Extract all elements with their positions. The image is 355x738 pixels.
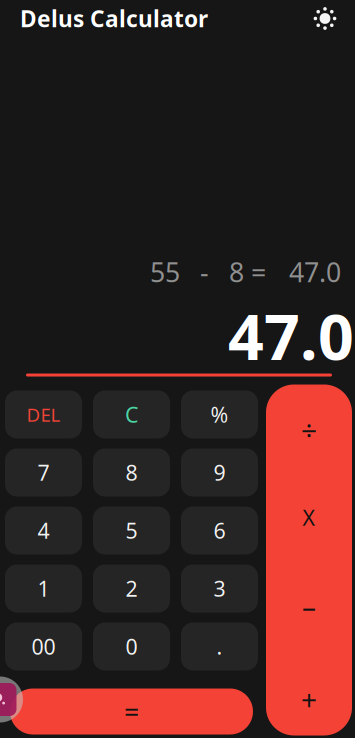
staticText: =: [124, 694, 139, 729]
staticText: 3: [213, 574, 225, 603]
button[interactable]: 0: [93, 622, 170, 670]
staticText: 00: [31, 632, 55, 661]
staticText: 47.0: [228, 294, 354, 377]
staticText: ÷: [301, 411, 317, 448]
staticText: 2: [125, 574, 137, 603]
staticText: 5: [125, 516, 137, 545]
button[interactable]: =: [10, 688, 253, 734]
staticText: DEL: [26, 402, 60, 427]
button[interactable]: 9: [181, 448, 258, 496]
button[interactable]: ÷: [266, 386, 352, 472]
button[interactable]: 6: [181, 506, 258, 554]
staticText: –: [302, 587, 316, 625]
button[interactable]: .: [181, 622, 258, 670]
staticText: =: [251, 254, 266, 289]
staticText: X: [302, 503, 315, 532]
button[interactable]: DEL: [5, 390, 82, 438]
button[interactable]: 2: [93, 564, 170, 612]
staticText: .: [216, 632, 222, 661]
button[interactable]: +: [266, 656, 352, 738]
staticText: 55: [150, 254, 180, 289]
staticText: 6: [213, 516, 225, 545]
staticText: 8: [229, 254, 244, 289]
button[interactable]: –: [266, 563, 352, 649]
staticText: %: [210, 400, 228, 429]
staticText: 0: [125, 632, 137, 661]
button[interactable]: 7: [5, 448, 82, 496]
button[interactable]: 00: [5, 622, 82, 670]
staticText: 47.0: [289, 254, 341, 289]
staticText: 8: [125, 458, 137, 487]
staticText: -: [200, 254, 209, 289]
button[interactable]: 1: [5, 564, 82, 612]
button[interactable]: 3: [181, 564, 258, 612]
staticText: C: [125, 400, 138, 429]
staticText: +: [301, 681, 317, 718]
button[interactable]: X: [266, 474, 352, 560]
staticText: Delus Calculator: [20, 3, 208, 33]
staticText: 7: [37, 458, 49, 487]
button[interactable]: 5: [93, 506, 170, 554]
button[interactable]: C: [93, 390, 170, 438]
button[interactable]: 4: [5, 506, 82, 554]
button[interactable]: 8: [93, 448, 170, 496]
button[interactable]: %: [181, 390, 258, 438]
button[interactable]: Toggle brightness: [314, 7, 336, 29]
staticText: 9: [213, 458, 225, 487]
staticText: 1: [37, 574, 49, 603]
staticText: 4: [37, 516, 49, 545]
